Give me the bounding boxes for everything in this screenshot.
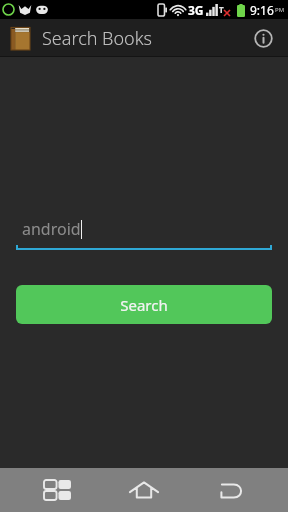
button[interactable]: About	[248, 23, 278, 53]
staticText: 3G	[188, 2, 204, 18]
staticText: 9:16	[250, 2, 274, 18]
staticText: android	[22, 218, 81, 240]
staticText: Search Books	[42, 26, 153, 51]
staticText: Search	[120, 295, 168, 315]
button[interactable]: Home	[114, 468, 174, 512]
staticText: PM	[275, 6, 285, 14]
button[interactable]: Recents	[27, 468, 87, 512]
button[interactable]: Back	[201, 468, 261, 512]
staticText: T	[219, 4, 224, 15]
button[interactable]: Search	[16, 285, 272, 324]
button[interactable]: android	[16, 218, 272, 250]
